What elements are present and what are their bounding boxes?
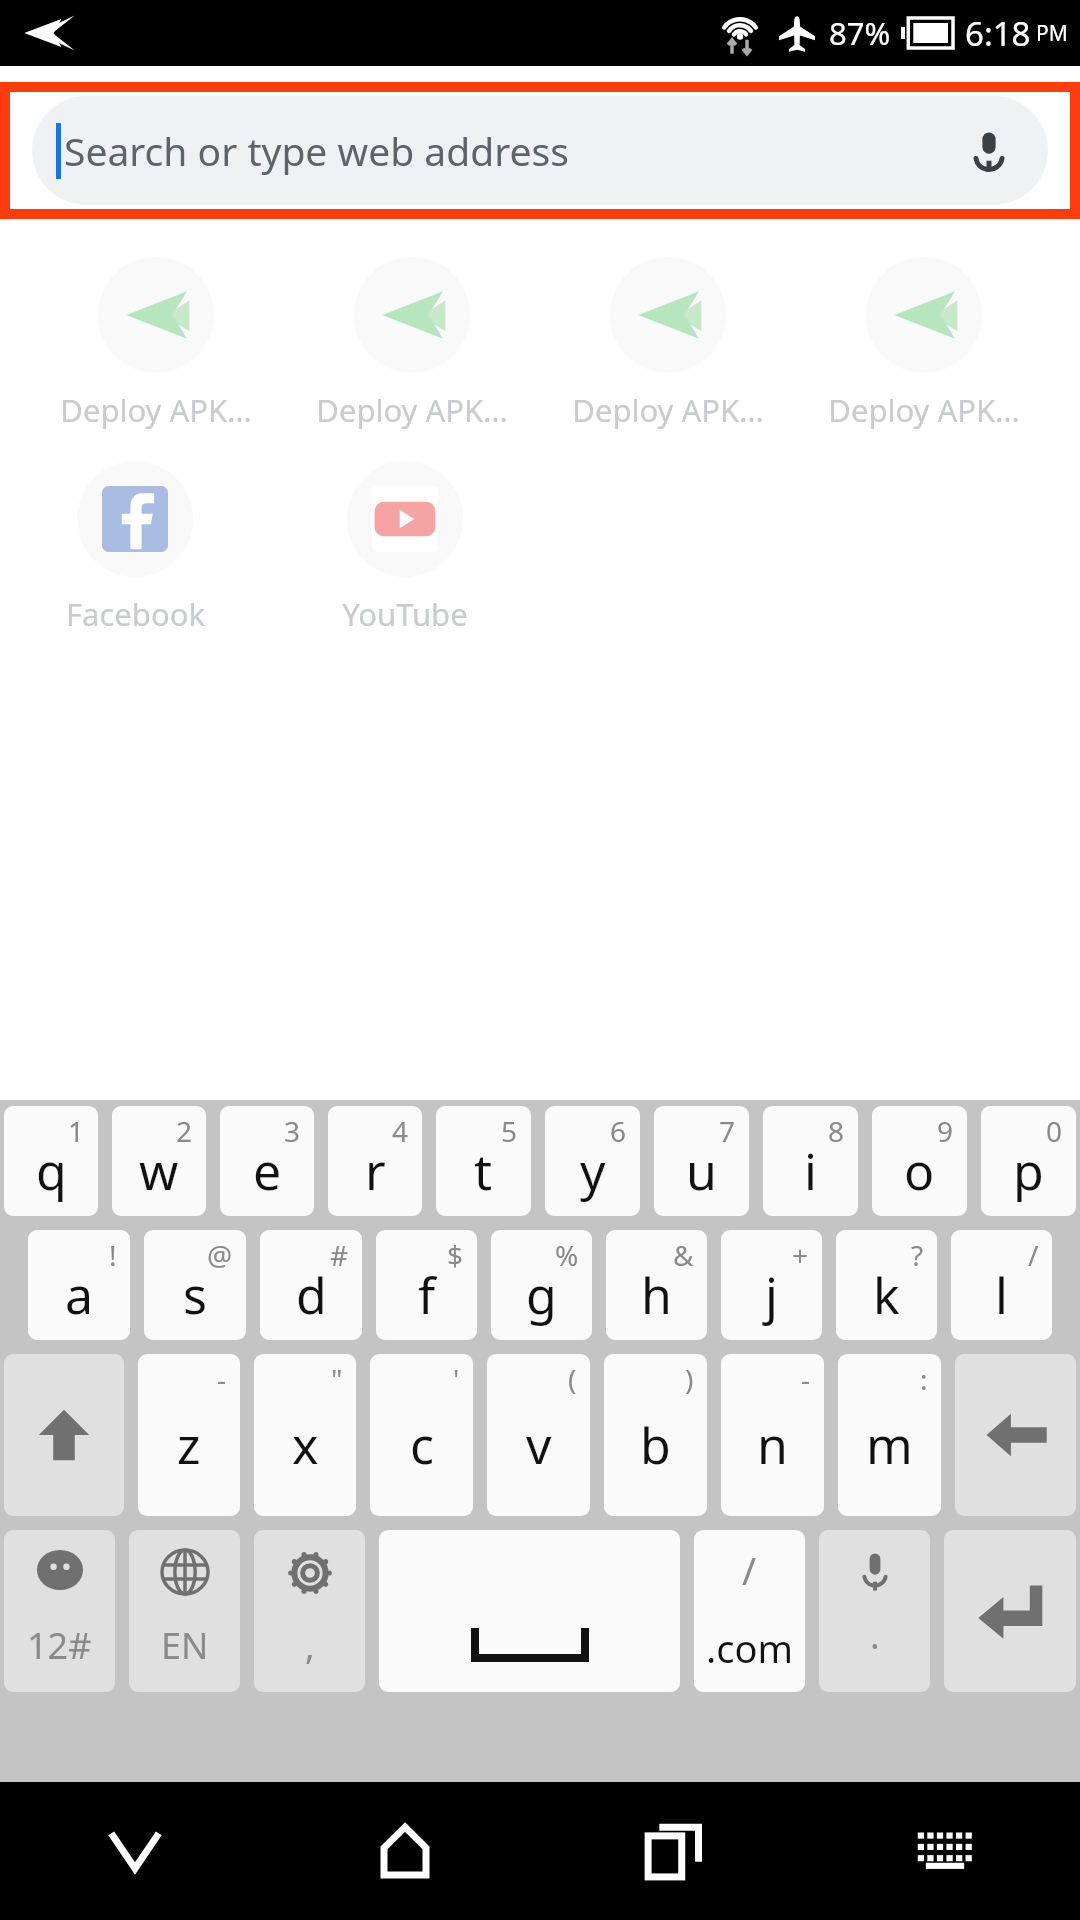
staticText: t xyxy=(474,1137,493,1205)
button[interactable]: @ xyxy=(144,1230,246,1340)
staticText: .com xyxy=(706,1622,793,1674)
staticText: Deploy APK… xyxy=(572,389,764,431)
staticText: n xyxy=(757,1411,788,1479)
staticText: " xyxy=(331,1360,343,1398)
staticText: 87% xyxy=(829,12,891,54)
staticText: 6 xyxy=(610,1112,627,1150)
staticText: z xyxy=(177,1411,201,1479)
staticText: ( xyxy=(568,1360,577,1398)
staticText: 1 xyxy=(68,1112,85,1150)
staticText: 0 xyxy=(1046,1112,1063,1150)
button[interactable]: & xyxy=(606,1230,707,1340)
staticText: ' xyxy=(453,1360,460,1398)
staticText: e xyxy=(253,1137,282,1205)
staticText: a xyxy=(65,1261,94,1329)
button[interactable]: 0 xyxy=(981,1106,1076,1216)
button[interactable]: Deploy APK… xyxy=(56,253,256,435)
button[interactable]: 6 xyxy=(545,1106,640,1216)
staticText: , xyxy=(305,1621,315,1670)
staticText: - xyxy=(801,1360,811,1398)
button[interactable]: 8 xyxy=(763,1106,858,1216)
button[interactable]: Back xyxy=(0,1782,270,1920)
staticText: 8 xyxy=(828,1112,845,1150)
staticText: 4 xyxy=(392,1112,409,1150)
button[interactable]: Deploy APK… xyxy=(568,253,768,435)
button[interactable]: - xyxy=(138,1354,240,1516)
button[interactable]: 1 xyxy=(4,1106,98,1216)
staticText: 3 xyxy=(284,1112,301,1150)
button[interactable]: Symbols xyxy=(4,1530,115,1692)
staticText: · xyxy=(870,1621,880,1670)
button[interactable]: Search or type web address xyxy=(10,92,1070,209)
staticText: h xyxy=(641,1261,672,1329)
staticText: 5 xyxy=(501,1112,518,1150)
button[interactable]: 7 xyxy=(654,1106,749,1216)
staticText: PM xyxy=(1036,19,1068,48)
button[interactable]: Voice search xyxy=(952,114,1026,188)
button[interactable]: Shift xyxy=(4,1354,124,1516)
button[interactable]: Language xyxy=(129,1530,240,1692)
button[interactable]: % xyxy=(491,1230,592,1340)
button[interactable]: 2 xyxy=(112,1106,206,1216)
staticText: / xyxy=(1028,1236,1039,1274)
staticText: Search or type web address xyxy=(64,124,569,177)
staticText: - xyxy=(217,1360,227,1398)
button[interactable]: Enter xyxy=(944,1530,1076,1692)
staticText: & xyxy=(673,1236,694,1274)
staticText: Facebook xyxy=(66,593,205,635)
staticText: / xyxy=(742,1544,757,1596)
staticText: YouTube xyxy=(342,593,468,635)
staticText: q xyxy=(36,1137,67,1205)
button[interactable]: Settings xyxy=(254,1530,365,1692)
button[interactable]: / xyxy=(951,1230,1052,1340)
staticText: j xyxy=(765,1261,778,1329)
button[interactable]: Deploy APK… xyxy=(824,253,1024,435)
staticText: # xyxy=(330,1236,349,1274)
button[interactable]: ' xyxy=(370,1354,473,1516)
staticText: w xyxy=(139,1137,179,1205)
staticText: p xyxy=(1013,1137,1044,1205)
button[interactable]: - xyxy=(721,1354,824,1516)
staticText: x xyxy=(292,1411,319,1479)
button[interactable]: ) xyxy=(604,1354,707,1516)
staticText: Deploy APK… xyxy=(60,389,252,431)
button[interactable]: Recent apps xyxy=(540,1782,810,1920)
button[interactable]: 3 xyxy=(220,1106,314,1216)
button[interactable]: / xyxy=(694,1530,805,1692)
button[interactable]: $ xyxy=(376,1230,477,1340)
button[interactable]: 5 xyxy=(436,1106,531,1216)
button[interactable]: ! xyxy=(28,1230,130,1340)
button[interactable]: 9 xyxy=(872,1106,967,1216)
staticText: 2 xyxy=(176,1112,193,1150)
button[interactable]: + xyxy=(721,1230,822,1340)
staticText: 9 xyxy=(937,1112,954,1150)
staticText: ) xyxy=(685,1360,694,1398)
button[interactable]: Facebook xyxy=(35,457,235,639)
button[interactable]: # xyxy=(260,1230,362,1340)
button[interactable]: : xyxy=(838,1354,941,1516)
staticText: % xyxy=(555,1236,579,1274)
staticText: o xyxy=(904,1137,935,1205)
staticText: u xyxy=(686,1137,717,1205)
staticText: c xyxy=(410,1411,434,1479)
button[interactable]: " xyxy=(254,1354,356,1516)
staticText: 7 xyxy=(719,1112,736,1150)
button[interactable]: Voice input xyxy=(819,1530,930,1692)
button[interactable]: Home xyxy=(270,1782,540,1920)
button[interactable]: ( xyxy=(487,1354,590,1516)
staticText: 12# xyxy=(27,1621,92,1670)
button[interactable]: Deploy APK… xyxy=(312,253,512,435)
button[interactable]: ? xyxy=(836,1230,937,1340)
button[interactable]: Backspace xyxy=(955,1354,1076,1516)
staticText: b xyxy=(640,1411,671,1479)
button[interactable]: 4 xyxy=(328,1106,422,1216)
staticText: d xyxy=(296,1261,327,1329)
button[interactable]: Space xyxy=(379,1530,680,1692)
staticText: m xyxy=(866,1411,913,1479)
staticText: y xyxy=(580,1137,606,1205)
button[interactable]: YouTube xyxy=(305,457,505,639)
staticText: g xyxy=(526,1261,557,1329)
staticText: ? xyxy=(911,1236,924,1274)
button[interactable]: Hide keyboard xyxy=(810,1782,1080,1920)
staticText: Deploy APK… xyxy=(828,389,1020,431)
